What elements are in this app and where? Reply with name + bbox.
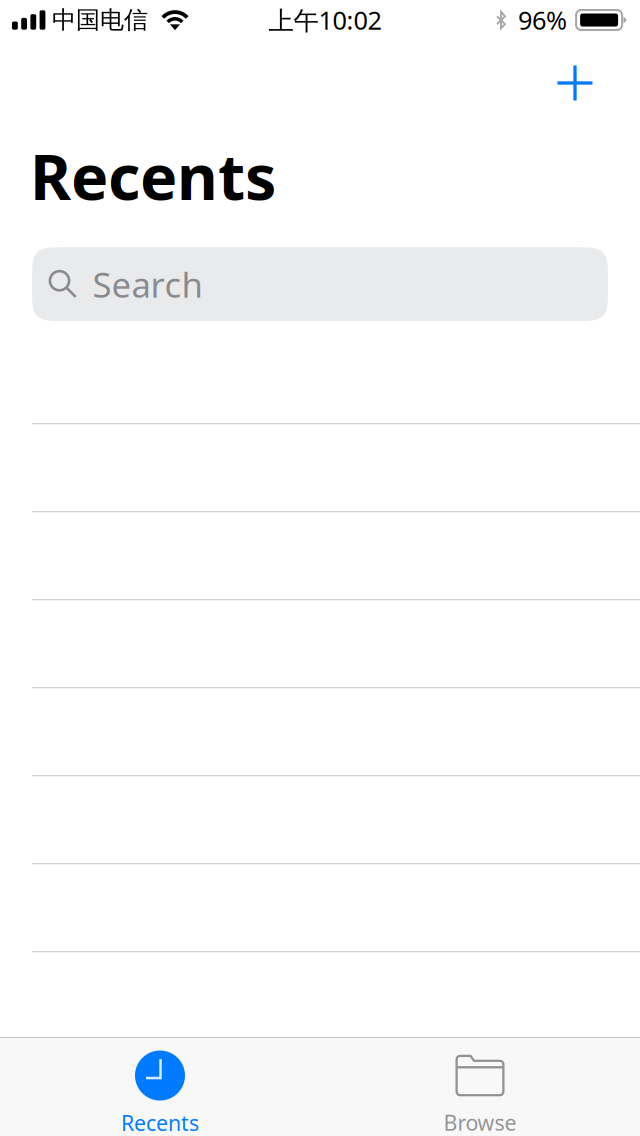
staticText: Recents <box>121 1109 199 1136</box>
staticText: Browse <box>443 1108 516 1136</box>
button[interactable]: Browse <box>320 1038 640 1136</box>
staticText: 96% <box>518 3 567 37</box>
staticText: 中国电信 <box>52 5 148 35</box>
staticText: 上午10:02 <box>268 3 381 37</box>
button[interactable]: Recents <box>0 1038 320 1136</box>
staticText: Search <box>92 261 202 307</box>
button[interactable]: Search <box>32 247 608 321</box>
staticText: Recents <box>30 134 276 217</box>
button[interactable]: New Folder <box>531 40 619 120</box>
